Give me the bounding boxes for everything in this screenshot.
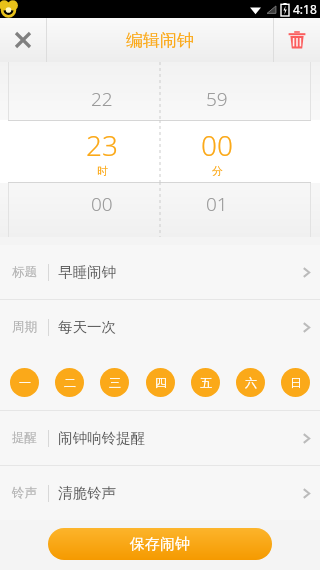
- staticText: 时: [97, 164, 108, 178]
- button[interactable]: 周期: [0, 300, 320, 354]
- staticText: 闹钟响铃提醒: [58, 429, 145, 447]
- staticText: 标题: [12, 264, 37, 280]
- button[interactable]: 保存闹钟: [48, 528, 272, 560]
- button[interactable]: Close: [0, 18, 46, 62]
- staticText: 三: [109, 375, 121, 390]
- button[interactable]: 提醒模式: [0, 411, 320, 465]
- staticText: 00: [201, 126, 233, 164]
- button[interactable]: 五: [191, 368, 220, 397]
- staticText: 周期: [12, 319, 37, 335]
- button[interactable]: 六: [236, 368, 265, 397]
- staticText: 清脆铃声: [58, 484, 116, 502]
- staticText: 保存闹钟: [130, 535, 190, 554]
- staticText: 一: [19, 375, 31, 390]
- button[interactable]: Delete: [274, 18, 320, 62]
- staticText: 编辑闹钟: [126, 30, 194, 51]
- staticText: 4:18: [293, 1, 317, 17]
- staticText: 22: [91, 86, 113, 112]
- staticText: 铃声: [12, 485, 37, 501]
- button[interactable]: 一: [10, 368, 39, 397]
- staticText: 二: [64, 375, 76, 390]
- staticText: 五: [200, 375, 212, 390]
- staticText: 日: [290, 375, 302, 390]
- staticText: 提醒模式: [12, 430, 48, 446]
- staticText: 01: [206, 191, 228, 217]
- staticText: 四: [155, 375, 167, 390]
- button[interactable]: 标题: [0, 245, 320, 299]
- staticText: 六: [245, 375, 257, 390]
- staticText: 早睡闹钟: [58, 263, 116, 281]
- button[interactable]: 四: [146, 368, 175, 397]
- staticText: 00: [91, 191, 113, 217]
- button[interactable]: 日: [281, 368, 310, 397]
- staticText: 每天一次: [58, 318, 116, 336]
- staticText: 分: [212, 164, 223, 178]
- staticText: 23: [86, 126, 118, 164]
- button[interactable]: 三: [100, 368, 129, 397]
- button[interactable]: 铃声: [0, 466, 320, 520]
- button[interactable]: 二: [55, 368, 84, 397]
- staticText: 59: [206, 86, 228, 112]
